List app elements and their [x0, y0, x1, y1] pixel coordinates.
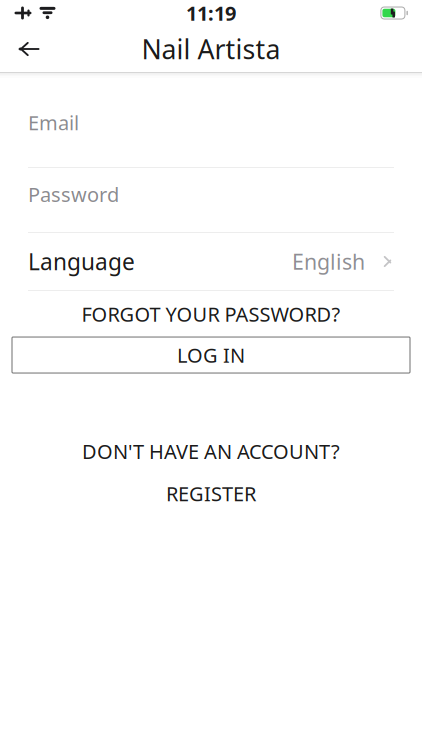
button[interactable]: LOG IN — [12, 337, 410, 373]
staticText: DON'T HAVE AN ACCOUNT? — [82, 438, 340, 465]
staticText: Language — [28, 246, 135, 276]
button[interactable]: REGISTER — [0, 473, 422, 515]
button[interactable]: Language — [0, 233, 422, 291]
staticText: FORGOT YOUR PASSWORD? — [81, 301, 340, 327]
staticText: REGISTER — [166, 480, 256, 507]
staticText: English — [292, 247, 365, 276]
button[interactable]: Email — [0, 78, 422, 168]
staticText: Nail Artista — [141, 31, 280, 67]
staticText: 11:19 — [186, 0, 236, 26]
staticText: LOG IN — [177, 342, 245, 368]
staticText: Password — [28, 181, 119, 208]
button[interactable]: Password — [0, 168, 422, 233]
button[interactable]: Back — [6, 26, 52, 72]
button[interactable]: FORGOT YOUR PASSWORD? — [0, 291, 422, 337]
staticText: Email — [28, 109, 79, 136]
